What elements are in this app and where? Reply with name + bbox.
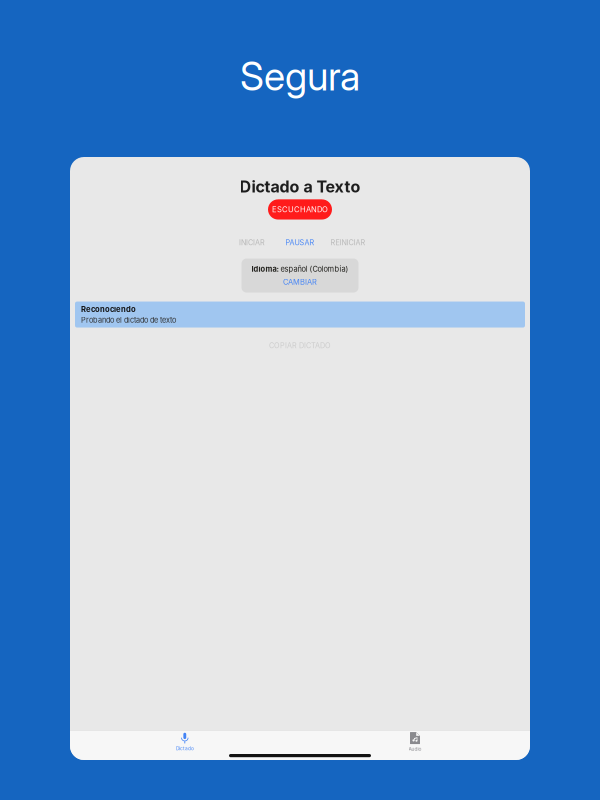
staticText: ESCUCHANDO: [272, 205, 328, 214]
staticText: CAMBIAR: [283, 277, 317, 286]
staticText: Reconociendo: [81, 305, 136, 314]
staticText: Idioma: español (Colombia): [251, 265, 348, 273]
button[interactable]: Audio: [355, 731, 475, 753]
staticText: COPIAR DICTADO: [269, 341, 331, 350]
button[interactable]: REINICIAR: [324, 237, 372, 249]
staticText: REINICIAR: [330, 238, 365, 247]
staticText: Dictado: [176, 746, 194, 751]
staticText: PAUSAR: [285, 238, 314, 247]
staticText: Audio: [408, 746, 421, 752]
staticText: Dictado a Texto: [239, 177, 360, 196]
staticText: Segura: [240, 53, 360, 100]
button[interactable]: COPIAR DICTADO: [220, 338, 380, 354]
button[interactable]: PAUSAR: [276, 237, 324, 249]
button[interactable]: INICIAR: [228, 237, 276, 249]
staticText: Probando el dictado de texto: [81, 316, 176, 325]
button[interactable]: Dictado: [125, 731, 245, 753]
staticText: INICIAR: [239, 238, 265, 247]
button[interactable]: CAMBIAR: [283, 277, 317, 286]
